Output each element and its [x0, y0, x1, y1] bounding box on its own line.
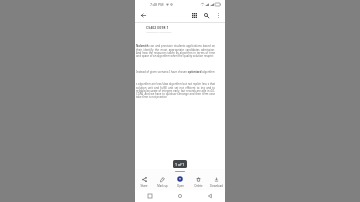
- button[interactable]: Search: [202, 11, 211, 20]
- button[interactable]: More options: [214, 11, 223, 20]
- staticText: Mark up: [157, 184, 168, 188]
- staticText: 1 of 1: [175, 162, 185, 167]
- staticText: s algorithm are less/slow algorithm but …: [136, 82, 215, 98]
- staticText: Share: [140, 184, 148, 188]
- staticText: Download: [210, 184, 223, 188]
- button[interactable]: Back: [139, 11, 148, 20]
- staticText: CS402 E098 1: [146, 25, 169, 30]
- button[interactable]: Download: [207, 174, 225, 190]
- button[interactable]: Delete: [189, 174, 207, 190]
- button[interactable]: Thumbnails: [190, 11, 199, 20]
- staticText: 7:48 PM: [150, 2, 164, 7]
- staticText: Open: [177, 184, 184, 188]
- button[interactable]: Recents: [135, 190, 165, 202]
- staticText: Instead of given scenario I have chosen …: [136, 70, 215, 74]
- staticText: Delete: [194, 184, 203, 188]
- staticText: Assignment submission: [146, 31, 172, 34]
- button[interactable]: Open: [171, 174, 189, 190]
- staticText: Nalsmith can and provision students appl…: [136, 44, 215, 58]
- button[interactable]: Share: [135, 174, 153, 190]
- button[interactable]: Home: [165, 190, 195, 202]
- button[interactable]: Mark up: [153, 174, 171, 190]
- button[interactable]: Back: [195, 190, 225, 202]
